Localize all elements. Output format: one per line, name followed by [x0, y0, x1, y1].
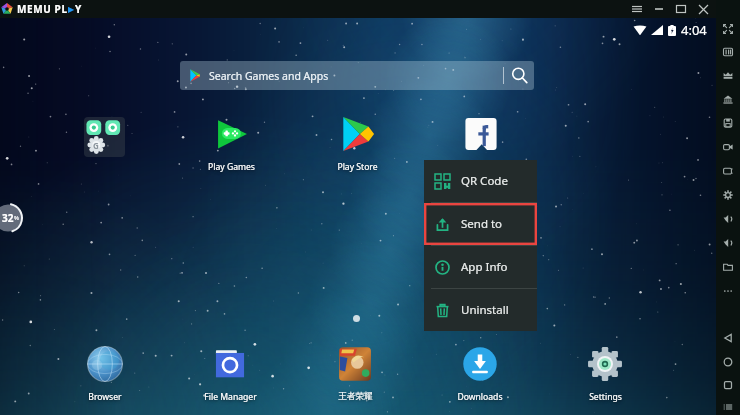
button[interactable]: Downloads — [445, 345, 515, 403]
button[interactable]: Fullscreen — [716, 18, 740, 40]
button[interactable]: MEmu widget — [84, 117, 125, 157]
button[interactable]: 王者荣耀 — [320, 345, 390, 402]
button[interactable]: Keyboard mapping — [716, 41, 740, 63]
staticText: MEMU PL — [17, 2, 68, 16]
button[interactable]: Shake — [716, 256, 740, 278]
button[interactable]: Send to — [424, 203, 537, 245]
staticText: 32 — [2, 211, 14, 225]
staticText: 4:04 — [681, 21, 707, 39]
button[interactable]: Volume down — [716, 232, 740, 254]
staticText: Settings — [589, 391, 622, 403]
button[interactable]: Uninstall — [424, 289, 537, 331]
staticText: Search Games and Apps — [209, 69, 329, 83]
staticText: Send to — [461, 216, 503, 232]
staticText: QR Code — [461, 173, 508, 189]
button[interactable]: Settings — [716, 184, 740, 206]
button[interactable]: Recents — [716, 374, 740, 396]
button[interactable]: Maximize — [670, 0, 692, 18]
staticText: 王者荣耀 — [338, 391, 373, 402]
staticText: ▶ — [68, 5, 75, 14]
button[interactable]: Notifications — [716, 396, 740, 415]
button[interactable]: Virtual location — [716, 88, 740, 110]
button[interactable]: Play Store — [322, 115, 392, 173]
staticText: Downloads — [457, 391, 503, 403]
staticText: Play Games — [208, 161, 255, 173]
staticText: % — [14, 214, 19, 222]
button[interactable]: App Info — [424, 246, 537, 288]
button[interactable]: Close — [692, 0, 714, 18]
button[interactable]: File Manager — [195, 345, 265, 403]
staticText: File Manager — [204, 391, 257, 403]
button[interactable]: Minimize — [648, 0, 670, 18]
staticText: Uninstall — [461, 302, 509, 318]
button[interactable]: Screenshot — [716, 160, 740, 182]
button[interactable]: Screen record — [716, 136, 740, 158]
staticText: Browser — [88, 391, 122, 403]
staticText: App Info — [461, 259, 508, 275]
button[interactable]: QR Code — [424, 160, 537, 202]
button[interactable]: Settings — [570, 345, 640, 403]
button[interactable]: Back — [716, 327, 740, 349]
button[interactable]: Search — [504, 61, 534, 90]
button[interactable]: More — [716, 280, 740, 302]
button[interactable]: Shared folder — [716, 112, 740, 134]
staticText: Play Store — [337, 161, 378, 173]
button[interactable]: Search Games and Apps — [180, 61, 534, 90]
button[interactable]: Facebook — [446, 115, 516, 153]
button[interactable]: Browser — [70, 345, 140, 403]
staticText: Y — [75, 2, 82, 16]
button[interactable]: Home — [716, 351, 740, 373]
button[interactable]: Volume up — [716, 208, 740, 230]
button[interactable]: Menu — [626, 0, 648, 18]
staticText: G — [93, 140, 99, 151]
button[interactable]: Operation recorder — [716, 64, 740, 86]
button[interactable]: Battery 32 percent — [0, 202, 24, 234]
button[interactable]: Play Games — [196, 115, 266, 173]
